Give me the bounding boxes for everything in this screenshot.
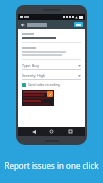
button[interactable]: Home [48, 128, 55, 135]
button[interactable]: Back [20, 22, 26, 28]
staticText: Send video recording [28, 83, 60, 87]
button[interactable]: Severity: High [22, 73, 81, 80]
button[interactable]: Type: Bug [22, 63, 81, 70]
button[interactable]: Back [30, 128, 37, 135]
button[interactable]: Send video recording [22, 83, 81, 87]
button[interactable] [74, 22, 83, 27]
button[interactable]: Recording preview [22, 90, 54, 106]
staticText: Type: Bug [22, 63, 39, 68]
button[interactable]: Recent apps [67, 128, 74, 135]
staticText: Severity: High [22, 73, 46, 78]
staticText: Report issues in one click [0, 160, 103, 171]
